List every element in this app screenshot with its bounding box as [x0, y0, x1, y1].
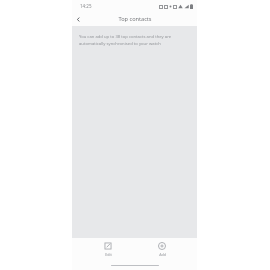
button[interactable]: Back	[72, 13, 84, 25]
staticText: Edit	[105, 252, 112, 257]
staticText: You can add up to 38 top contacts and th…	[79, 34, 183, 46]
button[interactable]: Add	[145, 241, 179, 258]
staticText: Add	[159, 252, 166, 257]
staticText: 14:25	[80, 3, 92, 9]
staticText: Top contacts	[118, 15, 152, 23]
button[interactable]: Edit	[91, 241, 125, 258]
